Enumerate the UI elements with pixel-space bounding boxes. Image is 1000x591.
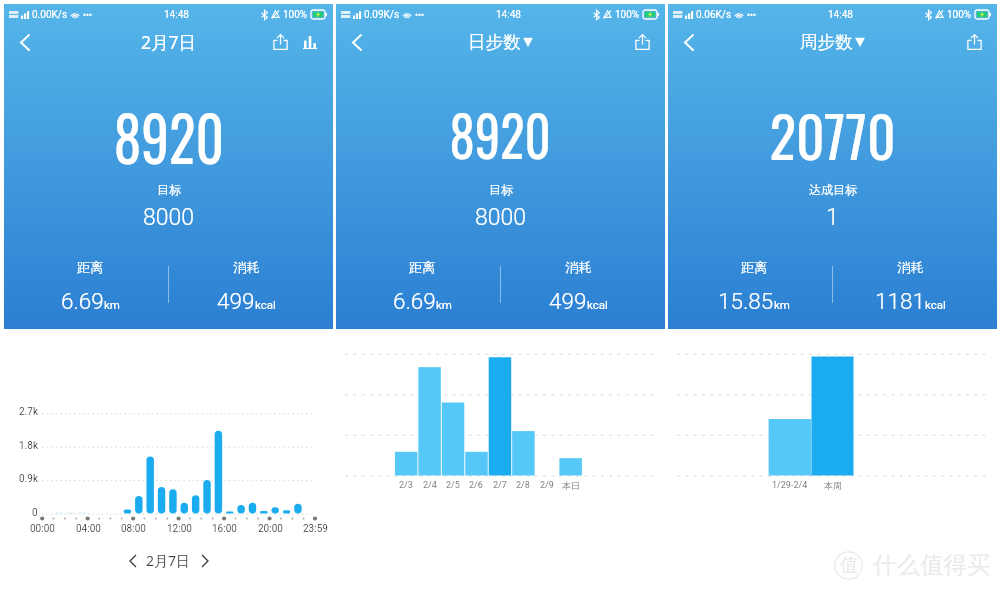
- staticText: 6.69: [393, 288, 436, 314]
- staticText: km: [104, 298, 120, 311]
- staticText: 2/8: [516, 480, 530, 491]
- staticText: 14:48: [164, 9, 189, 21]
- button[interactable]: 周步数: [800, 31, 865, 53]
- staticText: 0.9k: [19, 473, 38, 485]
- staticText: 值: [840, 554, 858, 577]
- staticText: 目标: [157, 182, 181, 197]
- staticText: 本日: [562, 480, 580, 491]
- staticText: 消耗: [565, 259, 592, 276]
- staticText: 16:00: [212, 523, 237, 535]
- button[interactable]: Previous day: [121, 550, 143, 572]
- staticText: 2/3: [399, 480, 413, 491]
- staticText: 499: [217, 288, 255, 314]
- staticText: kcal: [587, 298, 608, 311]
- button[interactable]: Share: [265, 27, 295, 57]
- staticText: km: [774, 298, 790, 311]
- staticText: 00:00: [30, 523, 55, 535]
- staticText: 12:00: [167, 523, 192, 535]
- staticText: 0: [32, 507, 38, 519]
- staticText: 0.06K/s: [696, 9, 732, 21]
- staticText: 2/4: [423, 480, 437, 491]
- staticText: 04:00: [76, 523, 101, 535]
- staticText: 8920: [449, 92, 551, 175]
- button[interactable]: Share: [627, 27, 657, 57]
- staticText: 8920: [114, 89, 224, 182]
- staticText: •••: [83, 9, 93, 20]
- staticText: 14:48: [828, 9, 853, 21]
- staticText: 2/5: [446, 480, 460, 491]
- staticText: 2/6: [469, 480, 483, 491]
- staticText: 2月7日: [141, 30, 197, 54]
- staticText: 20770: [769, 92, 896, 176]
- staticText: 499: [549, 288, 587, 314]
- button[interactable]: Back: [4, 24, 44, 60]
- staticText: 距离: [741, 259, 768, 276]
- staticText: kcal: [925, 298, 946, 311]
- staticText: 8000: [143, 204, 195, 231]
- staticText: 本周: [824, 480, 842, 491]
- staticText: 1: [826, 204, 839, 231]
- staticText: 100%: [947, 9, 972, 21]
- staticText: 14:48: [496, 9, 521, 21]
- staticText: 1.8k: [19, 440, 38, 452]
- staticText: 100%: [615, 9, 640, 21]
- staticText: 2/7: [493, 480, 507, 491]
- button[interactable]: Statistics: [295, 27, 325, 57]
- staticText: 消耗: [233, 259, 260, 276]
- button[interactable]: Next day: [194, 550, 216, 572]
- staticText: 消耗: [897, 259, 924, 276]
- staticText: •••: [747, 9, 757, 20]
- button[interactable]: Share: [959, 27, 989, 57]
- staticText: 2/9: [540, 480, 554, 491]
- staticText: km: [436, 298, 452, 311]
- staticText: 达成目标: [809, 182, 857, 197]
- staticText: 23:59: [303, 523, 328, 535]
- staticText: 100%: [283, 9, 308, 21]
- staticText: 周步数: [800, 31, 853, 53]
- staticText: 距离: [77, 259, 104, 276]
- staticText: 2.7k: [19, 406, 38, 418]
- staticText: 距离: [409, 259, 436, 276]
- staticText: 20:00: [258, 523, 283, 535]
- staticText: 8000: [475, 204, 527, 231]
- staticText: 日步数: [468, 31, 521, 53]
- staticText: 08:00: [121, 523, 146, 535]
- staticText: 1/29-2/4: [772, 480, 808, 491]
- button[interactable]: Back: [668, 24, 708, 60]
- staticText: 0.09K/s: [364, 9, 400, 21]
- button[interactable]: 2月7日: [146, 547, 191, 574]
- staticText: 1181: [875, 288, 925, 314]
- staticText: kcal: [255, 298, 276, 311]
- staticText: •••: [415, 9, 425, 20]
- button[interactable]: 日步数: [468, 31, 533, 53]
- staticText: 0.00K/s: [32, 9, 68, 21]
- staticText: 6.69: [61, 288, 104, 314]
- staticText: 什么值得买: [873, 550, 991, 580]
- staticText: 15.85: [718, 288, 774, 314]
- staticText: 目标: [489, 182, 513, 197]
- button[interactable]: 2月7日: [141, 30, 197, 54]
- button[interactable]: Back: [336, 24, 376, 60]
